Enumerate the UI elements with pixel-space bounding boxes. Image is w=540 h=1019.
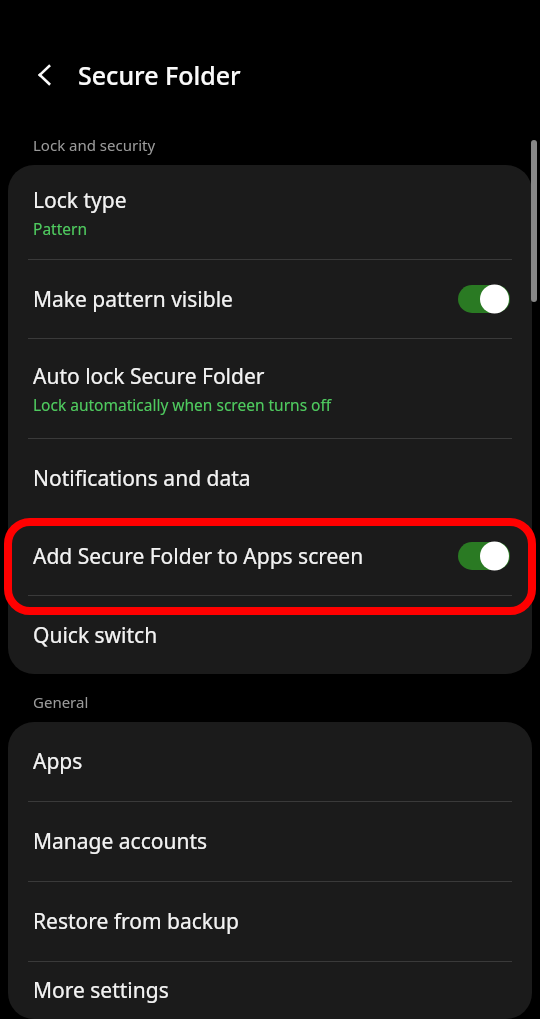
staticText: Auto lock Secure Folder (33, 362, 265, 391)
staticText: Lock and security (33, 135, 156, 155)
staticText: General (33, 692, 89, 712)
button[interactable]: Manage accounts (8, 802, 532, 881)
staticText: Quick switch (33, 621, 158, 650)
button[interactable]: Quick switch (8, 596, 532, 674)
button[interactable]: Add Secure Folder to Apps screen (8, 517, 532, 595)
button[interactable]: Auto lock Secure Folder (8, 339, 532, 438)
button[interactable]: Back (21, 51, 69, 99)
button[interactable]: More settings (8, 962, 532, 1019)
staticText: Pattern (33, 218, 87, 239)
staticText: Add Secure Folder to Apps screen (33, 542, 458, 571)
button[interactable]: Apps (8, 722, 532, 801)
button[interactable]: Notifications and data (8, 439, 532, 517)
staticText: Apps (33, 747, 83, 776)
staticText: Notifications and data (33, 464, 251, 493)
button[interactable]: Toggle on (458, 541, 510, 571)
staticText: Manage accounts (33, 827, 208, 856)
staticText: Secure Folder (78, 58, 241, 92)
staticText: Lock automatically when screen turns off (33, 394, 332, 415)
button[interactable]: Lock type (8, 165, 532, 259)
staticText: More settings (33, 976, 169, 1005)
staticText: Lock type (33, 186, 127, 215)
button[interactable]: Toggle on (458, 284, 510, 314)
staticText: Make pattern visible (33, 285, 458, 314)
staticText: Restore from backup (33, 907, 239, 936)
button[interactable]: Make pattern visible (8, 260, 532, 338)
button[interactable]: Restore from backup (8, 882, 532, 961)
